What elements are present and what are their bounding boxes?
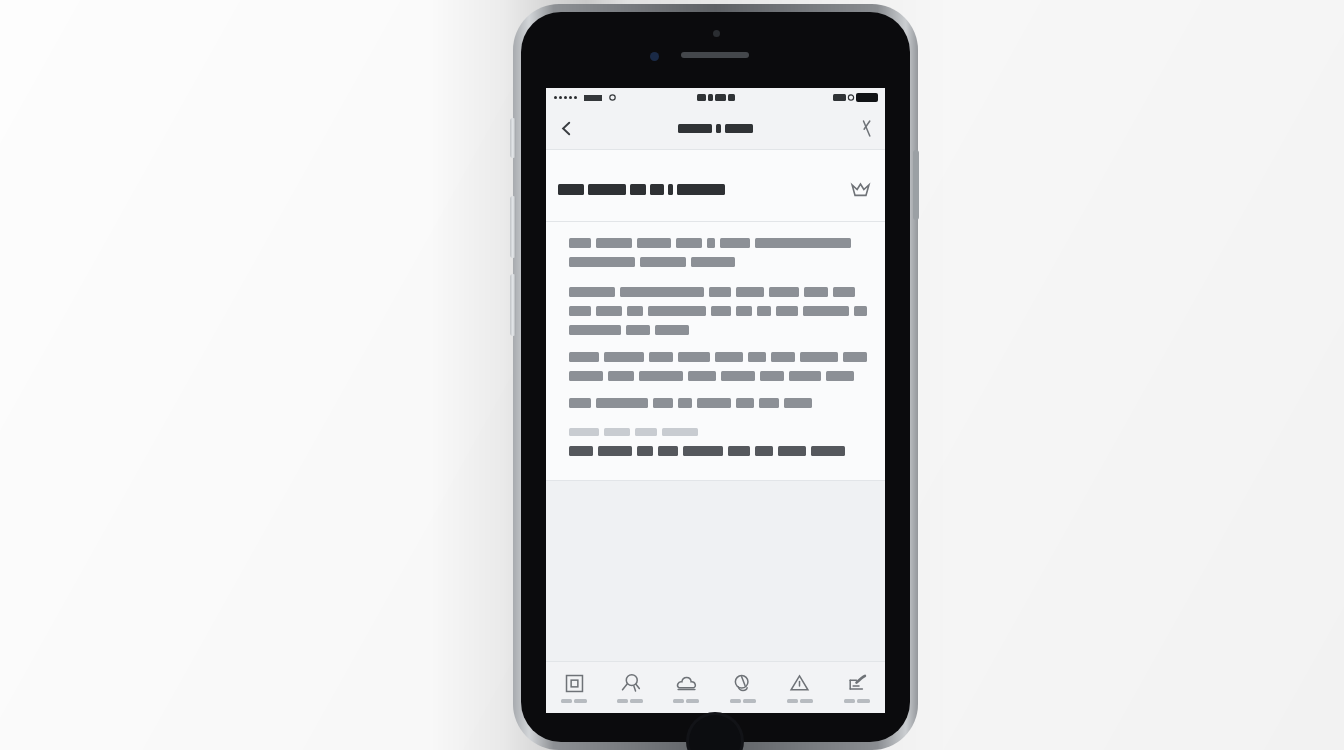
- button[interactable]: Settings: [828, 662, 885, 713]
- button[interactable]: Discover: [602, 662, 658, 713]
- button[interactable]: Weather: [658, 662, 714, 713]
- button[interactable]: Search: [714, 662, 771, 713]
- button[interactable]: Save: [558, 176, 873, 202]
- button[interactable]: More options: [847, 107, 885, 149]
- button[interactable]: Alerts: [771, 662, 828, 713]
- button[interactable]: Save: [847, 176, 873, 202]
- button[interactable]: Apps: [546, 662, 602, 713]
- button[interactable]: Back: [546, 107, 586, 149]
